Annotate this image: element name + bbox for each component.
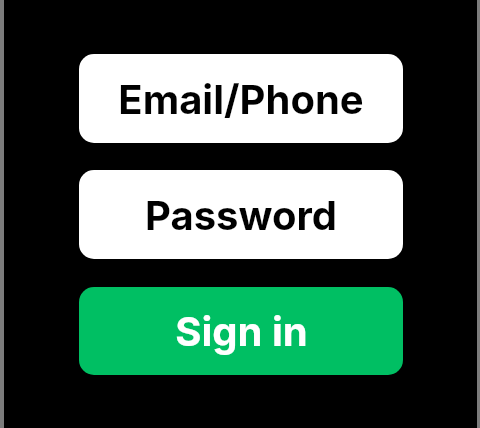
button[interactable]: Sign in — [79, 287, 403, 375]
staticText: Sign in — [175, 307, 308, 355]
staticText: Password — [145, 191, 337, 239]
button[interactable]: Email or phone number field — [79, 54, 403, 143]
staticText: Email/Phone — [118, 75, 364, 123]
button[interactable]: Password field — [79, 170, 403, 259]
